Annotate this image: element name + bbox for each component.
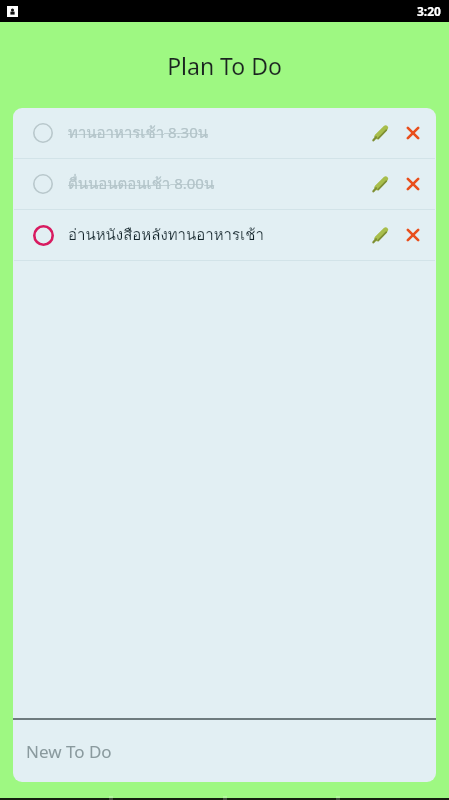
button[interactable]: Edit bbox=[362, 116, 396, 150]
button[interactable]: Delete bbox=[396, 167, 430, 201]
button[interactable]: Delete bbox=[396, 116, 430, 150]
button[interactable]: Mark not done bbox=[13, 108, 436, 158]
button[interactable]: Edit bbox=[362, 167, 396, 201]
button[interactable]: Edit bbox=[362, 218, 396, 252]
button[interactable]: Mark not done bbox=[30, 120, 56, 146]
button[interactable]: New To Do bbox=[13, 720, 436, 782]
staticText: New To Do bbox=[26, 740, 112, 763]
staticText: 3:20 bbox=[417, 3, 441, 19]
staticText: ทานอาหารเช้า 8.30น bbox=[68, 121, 362, 145]
button[interactable]: Delete bbox=[396, 218, 430, 252]
staticText: ตื่นนอนตอนเช้า 8.00น bbox=[68, 172, 362, 196]
staticText: Plan To Do bbox=[167, 50, 282, 81]
button[interactable]: Mark done bbox=[13, 210, 436, 260]
button[interactable]: Mark not done bbox=[30, 171, 56, 197]
button[interactable]: Mark not done bbox=[13, 159, 436, 209]
staticText: อ่านหนังสือหลังทานอาหารเช้า bbox=[68, 223, 362, 247]
button[interactable]: Mark done bbox=[30, 222, 56, 248]
